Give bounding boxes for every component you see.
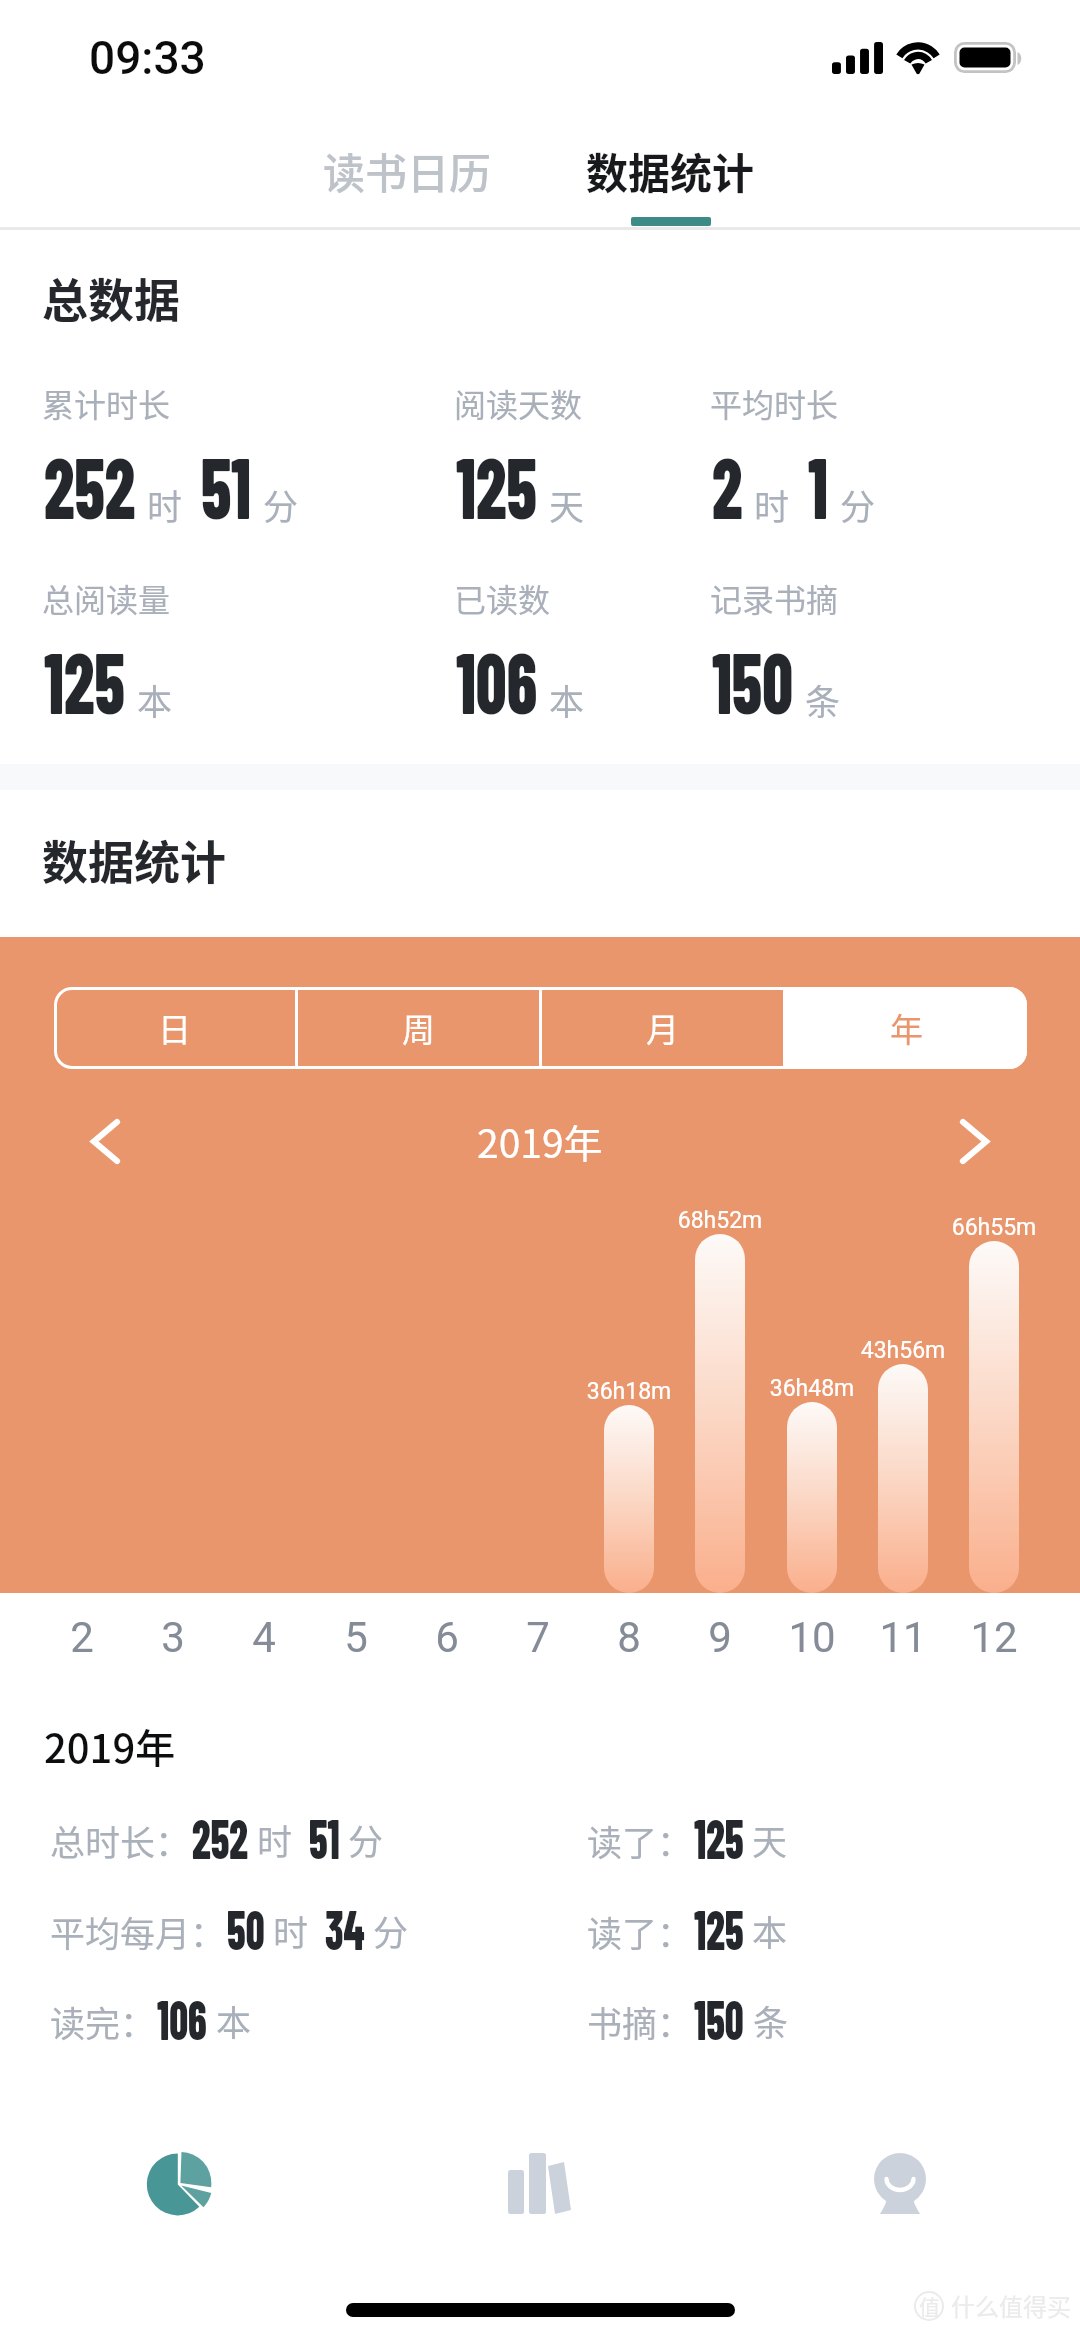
staticText: 125 [456, 433, 538, 536]
staticText: 已读数 [454, 575, 551, 621]
staticText: 4 [219, 1613, 309, 1662]
button[interactable]: Statistics [109, 2114, 249, 2254]
staticText: 周 [402, 1004, 435, 1052]
button[interactable]: 数据统计 [550, 122, 791, 218]
staticText: 51 [201, 433, 251, 536]
button[interactable]: Previous year [69, 1105, 141, 1177]
button[interactable]: 日 [54, 987, 295, 1069]
staticText: 天 [752, 1814, 788, 1865]
staticText: 本 [752, 1905, 788, 1956]
staticText: 5 [311, 1613, 401, 1662]
staticText: 6 [402, 1613, 492, 1662]
staticText: 36h48m [737, 1375, 887, 1402]
staticText: 读了： [587, 1906, 693, 1957]
staticText: 分 [840, 479, 876, 530]
staticText: 106 [157, 1985, 207, 2051]
staticText: 时 [257, 1814, 293, 1865]
staticText: 总数据 [42, 264, 180, 331]
staticText: 月 [646, 1004, 679, 1052]
staticText: 值 [919, 2291, 940, 2321]
button[interactable]: 周 [298, 987, 539, 1069]
staticText: 时 [754, 479, 790, 530]
staticText: 11 [858, 1613, 948, 1662]
staticText: 年 [890, 1004, 923, 1052]
staticText: 1 [808, 433, 828, 536]
staticText: 34 [325, 1895, 365, 1961]
staticText: 条 [753, 1995, 789, 2046]
staticText: 252 [44, 433, 136, 536]
staticText: 7 [493, 1613, 583, 1662]
button[interactable]: 年 [786, 987, 1027, 1069]
staticText: 09:33 [89, 31, 206, 85]
staticText: 分 [373, 1905, 409, 1956]
staticText: 2019年 [477, 1113, 603, 1169]
staticText: 总时长： [50, 1815, 191, 1866]
staticText: 本 [216, 1995, 252, 2046]
staticText: 12 [949, 1613, 1039, 1662]
staticText: 50 [227, 1895, 265, 1961]
staticText: 51 [309, 1804, 340, 1870]
staticText: 时 [147, 479, 183, 530]
staticText: 本 [549, 674, 585, 725]
staticText: 43h56m [828, 1337, 978, 1364]
staticText: 36h18m [554, 1378, 704, 1405]
staticText: 125 [694, 1804, 744, 1870]
staticText: 记录书摘 [710, 575, 839, 621]
button[interactable]: Next year [938, 1105, 1010, 1177]
staticText: 125 [694, 1895, 744, 1961]
staticText: 150 [712, 628, 794, 731]
staticText: 66h55m [919, 1214, 1069, 1241]
staticText: 10 [767, 1613, 857, 1662]
staticText: 书摘： [587, 1996, 693, 2047]
staticText: 数据统计 [42, 826, 226, 893]
staticText: 2 [37, 1613, 127, 1662]
staticText: 8 [584, 1613, 674, 1662]
staticText: 150 [694, 1985, 744, 2051]
staticText: 2019年 [44, 1717, 176, 1775]
staticText: 条 [805, 674, 841, 725]
staticText: 什么值得买 [951, 2288, 1071, 2323]
staticText: 9 [675, 1613, 765, 1662]
button[interactable]: Profile [830, 2114, 970, 2254]
staticText: 累计时长 [42, 380, 171, 426]
button[interactable]: 月 [542, 987, 783, 1069]
staticText: 3 [128, 1613, 218, 1662]
button[interactable]: Books [470, 2114, 610, 2254]
staticText: 读了： [587, 1815, 693, 1866]
staticText: 数据统计 [586, 140, 755, 201]
staticText: 252 [192, 1804, 248, 1870]
staticText: 106 [456, 628, 538, 731]
staticText: 时 [273, 1905, 309, 1956]
staticText: 读完： [50, 1996, 156, 2047]
staticText: 分 [263, 479, 299, 530]
staticText: 日 [158, 1004, 191, 1052]
staticText: 2 [712, 433, 743, 536]
staticText: 读书日历 [323, 140, 492, 201]
staticText: 总阅读量 [42, 575, 171, 621]
staticText: 阅读天数 [454, 380, 583, 426]
staticText: 平均时长 [710, 380, 839, 426]
staticText: 平均每月： [50, 1906, 226, 1957]
staticText: 68h52m [645, 1207, 795, 1234]
staticText: 125 [44, 628, 126, 731]
staticText: 天 [549, 479, 585, 530]
staticText: 本 [137, 674, 173, 725]
button[interactable]: 读书日历 [287, 122, 528, 218]
staticText: 分 [348, 1814, 384, 1865]
